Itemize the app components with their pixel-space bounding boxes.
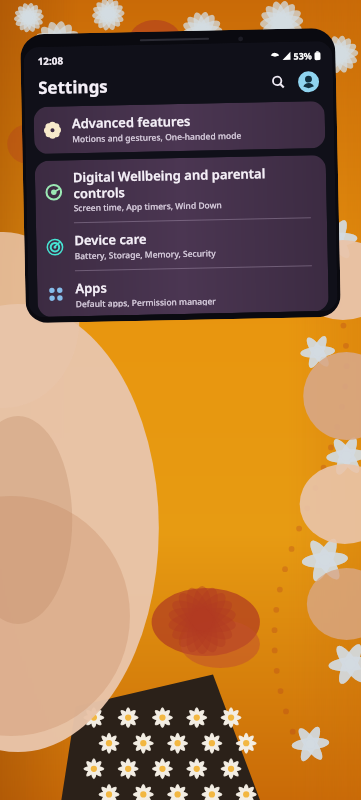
staticText: Apps [75, 279, 107, 297]
button[interactable]: Account [295, 68, 321, 95]
button[interactable]: Device care [36, 218, 328, 271]
staticText: Device care [74, 230, 147, 249]
staticText: Screen time, App timers, Wind Down [73, 199, 223, 214]
button[interactable]: Apps [37, 266, 329, 317]
staticText: Settings [38, 75, 108, 99]
button[interactable]: Search [265, 69, 291, 95]
staticText: 53% [293, 49, 313, 62]
staticText: 12:08 [37, 53, 64, 68]
staticText: Battery, Storage, Memory, Security [74, 247, 217, 262]
staticText: Motions and gestures, One-handed mode [72, 130, 242, 145]
staticText: Advanced features [72, 112, 191, 132]
button[interactable]: Advanced features [33, 101, 325, 154]
staticText: Default apps, Permission manager [75, 295, 217, 308]
button[interactable]: Digital Wellbeing and parental controls [35, 155, 327, 223]
staticText: Digital Wellbeing and parental controls [73, 164, 266, 201]
